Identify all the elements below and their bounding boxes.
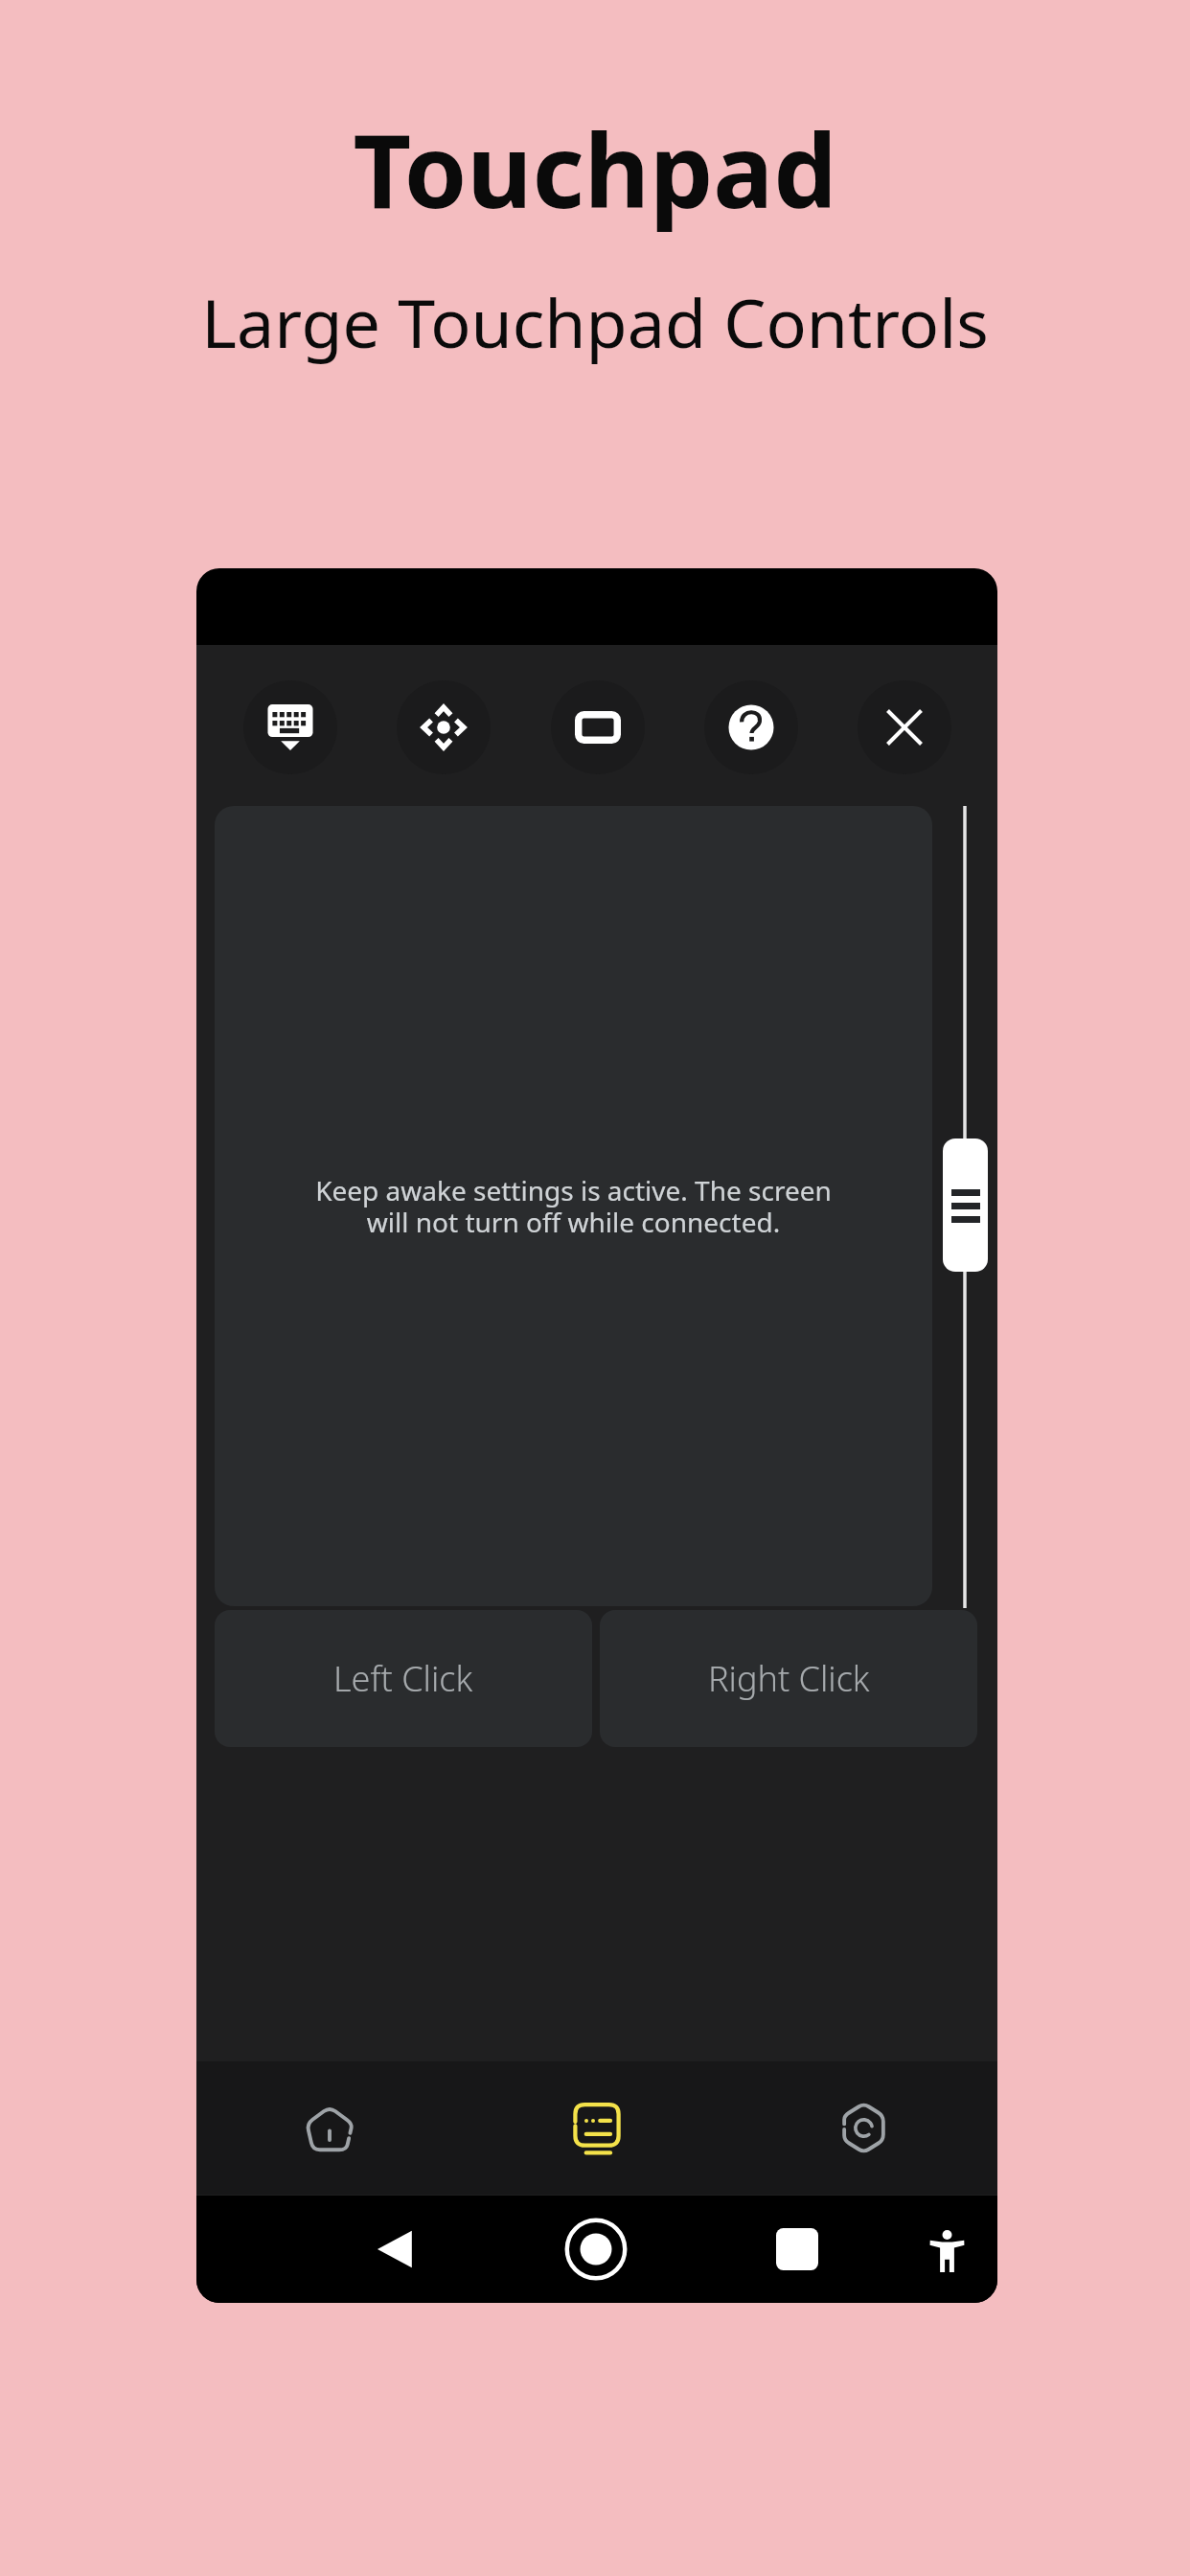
staticText: Right Click	[708, 1655, 870, 1702]
button[interactable]: Hide keyboard	[243, 680, 337, 774]
button[interactable]: Accessibility	[893, 2196, 997, 2303]
staticText: Touchpad	[353, 101, 837, 238]
staticText: Left Click	[333, 1655, 473, 1702]
button[interactable]: Close	[858, 680, 951, 774]
button[interactable]: Recent apps	[744, 2196, 851, 2303]
staticText: Keep awake settings is active. The scree…	[291, 1172, 856, 1240]
button[interactable]: Left Click	[215, 1610, 592, 1747]
button[interactable]: Move pointer	[397, 680, 491, 774]
button[interactable]: Right Click	[600, 1610, 977, 1747]
staticText: Large Touchpad Controls	[201, 276, 989, 367]
button[interactable]: Settings	[730, 2061, 997, 2195]
button[interactable]: Touchpad surface	[215, 806, 932, 1606]
button[interactable]: Scroll	[943, 1138, 988, 1272]
button[interactable]: Home	[196, 2061, 463, 2195]
button[interactable]: Help	[704, 680, 798, 774]
button[interactable]: Home	[542, 2196, 650, 2303]
button[interactable]: Back	[342, 2196, 449, 2303]
button[interactable]: Screen	[551, 680, 645, 774]
button[interactable]: Touchpad	[463, 2061, 730, 2195]
